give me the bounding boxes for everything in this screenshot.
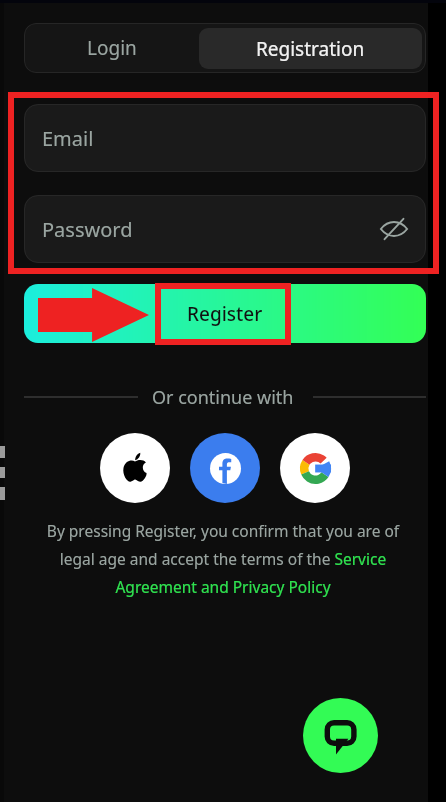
button[interactable]: Email bbox=[24, 104, 426, 172]
staticText: Registration bbox=[256, 36, 365, 62]
button[interactable]: Continue with Google bbox=[280, 433, 350, 503]
staticText: Password bbox=[42, 216, 133, 243]
staticText: Login bbox=[87, 35, 137, 61]
button[interactable]: Continue with Apple bbox=[100, 433, 170, 503]
button[interactable]: Show password bbox=[378, 213, 410, 245]
staticText: Or continue with bbox=[152, 385, 294, 410]
button[interactable]: Register bbox=[24, 284, 426, 343]
button[interactable]: Chat support bbox=[303, 698, 378, 773]
button[interactable]: Registration bbox=[199, 28, 422, 69]
button[interactable]: Login bbox=[25, 24, 199, 72]
staticText: Register bbox=[187, 301, 263, 327]
staticText: Email bbox=[42, 125, 94, 152]
staticText: By pressing Register, you confirm that y… bbox=[43, 520, 403, 598]
button[interactable]: Password bbox=[24, 195, 426, 263]
button[interactable]: Continue with Facebook bbox=[190, 433, 260, 503]
